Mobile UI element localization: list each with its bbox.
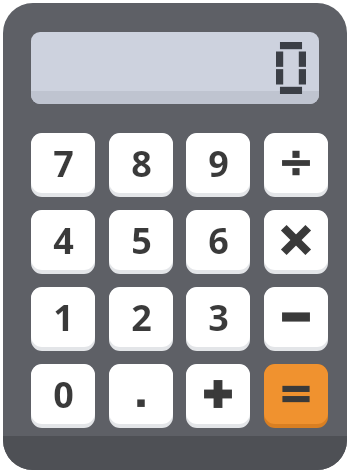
staticText: 1: [53, 293, 74, 342]
button[interactable]: 8: [109, 133, 173, 197]
button[interactable]: Subtract: [264, 287, 328, 351]
button[interactable]: 5: [109, 210, 173, 274]
staticText: 3: [208, 293, 229, 342]
button[interactable]: 2: [109, 287, 173, 351]
button[interactable]: Add: [186, 364, 250, 428]
staticText: 9: [208, 139, 229, 188]
staticText: 4: [53, 216, 74, 265]
button[interactable]: Decimal point: [109, 364, 173, 428]
button[interactable]: 9: [186, 133, 250, 197]
button[interactable]: 3: [186, 287, 250, 351]
button[interactable]: 4: [31, 210, 95, 274]
button[interactable]: 7: [31, 133, 95, 197]
staticText: 7: [53, 139, 74, 188]
staticText: 8: [131, 139, 152, 188]
staticText: 0: [53, 370, 74, 419]
button[interactable]: 6: [186, 210, 250, 274]
staticText: 6: [208, 216, 229, 265]
button[interactable]: Equals: [264, 364, 328, 428]
staticText: 5: [131, 216, 152, 265]
button[interactable]: Multiply: [264, 210, 328, 274]
button[interactable]: 1: [31, 287, 95, 351]
button[interactable]: Divide: [264, 133, 328, 197]
staticText: 2: [131, 293, 152, 342]
button[interactable]: 0: [31, 364, 95, 428]
